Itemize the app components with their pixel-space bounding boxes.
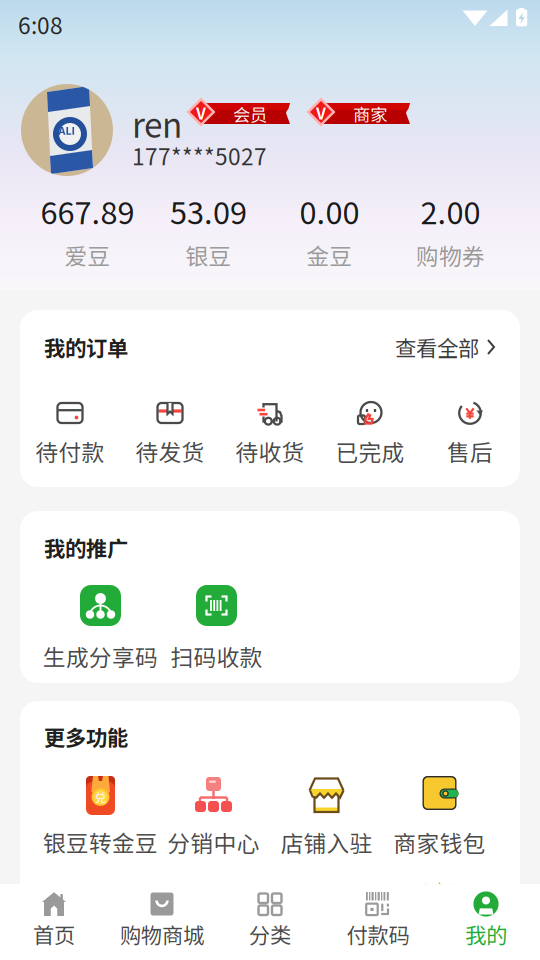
- staticText: 购物商城: [120, 919, 204, 949]
- staticText: 待发货: [135, 435, 204, 467]
- button[interactable]: 2.00: [390, 197, 511, 277]
- staticText: 商家钱包: [393, 826, 485, 858]
- staticText: 付款码: [346, 919, 409, 949]
- staticText: 已完成: [335, 435, 404, 467]
- button[interactable]: 待付款: [20, 384, 120, 472]
- button[interactable]: 付款码: [324, 884, 432, 960]
- staticText: 售后: [447, 435, 493, 467]
- staticText: 0.00: [299, 189, 359, 233]
- staticText: 更多功能: [44, 721, 128, 752]
- staticText: 金豆: [306, 239, 352, 271]
- button[interactable]: 667.89: [27, 197, 148, 277]
- staticText: V: [196, 101, 206, 124]
- staticText: 商家: [353, 101, 387, 127]
- button[interactable]: 0.00: [269, 197, 390, 277]
- staticText: 银豆转金豆: [43, 826, 158, 858]
- button[interactable]: 生成分享码: [38, 585, 163, 685]
- staticText: 查看全部: [395, 332, 479, 362]
- staticText: 2.00: [420, 189, 480, 233]
- button[interactable]: 查看全部: [395, 328, 496, 366]
- staticText: 扫码收款: [170, 640, 262, 672]
- staticText: 53.09: [170, 189, 247, 233]
- staticText: 我的: [465, 919, 507, 949]
- staticText: 爱豆: [64, 239, 110, 271]
- button[interactable]: 已完成: [320, 384, 420, 472]
- button[interactable]: 首页: [0, 884, 108, 960]
- staticText: ALI: [58, 122, 75, 138]
- button[interactable]: 53.09: [148, 197, 269, 277]
- staticText: 银豆: [185, 239, 231, 271]
- staticText: 分销中心: [167, 826, 259, 858]
- button[interactable]: 分销中心: [151, 771, 276, 871]
- staticText: 待付款: [35, 435, 104, 467]
- staticText: 177****5027: [132, 139, 267, 172]
- button[interactable]: 店铺入驻: [264, 771, 389, 871]
- button[interactable]: 购物商城: [108, 884, 216, 960]
- staticText: 667.89: [40, 189, 134, 233]
- staticText: 会员: [233, 101, 267, 127]
- button[interactable]: 待收货: [220, 384, 320, 472]
- button[interactable]: 我的: [432, 884, 540, 960]
- button[interactable]: 待发货: [120, 384, 220, 472]
- button[interactable]: 扫码收款: [154, 585, 279, 685]
- staticText: 我的订单: [44, 332, 128, 362]
- staticText: 生成分享码: [43, 640, 158, 672]
- staticText: 首页: [33, 919, 75, 949]
- button[interactable]: 售后: [420, 384, 520, 472]
- staticText: 我的推广: [44, 532, 128, 563]
- staticText: 店铺入驻: [280, 826, 372, 858]
- staticText: ren: [132, 99, 182, 147]
- button[interactable]: 分类: [216, 884, 324, 960]
- staticText: 待收货: [235, 435, 304, 467]
- button[interactable]: 兑: [38, 771, 163, 871]
- staticText: 兑: [94, 788, 106, 806]
- staticText: V: [316, 101, 326, 124]
- staticText: 分类: [249, 919, 291, 949]
- staticText: 购物券: [416, 239, 485, 271]
- staticText: 6:08: [18, 8, 63, 41]
- button[interactable]: 商家钱包: [377, 771, 502, 871]
